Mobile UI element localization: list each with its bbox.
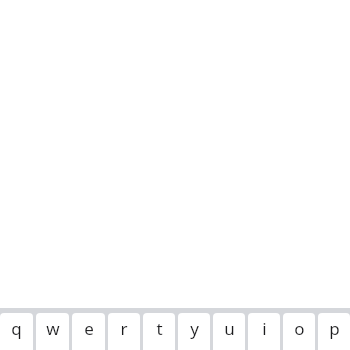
button[interactable]: Key u [213, 313, 245, 350]
staticText: u [224, 317, 235, 340]
button[interactable]: Key t [143, 313, 175, 350]
staticText: q [11, 317, 22, 340]
staticText: r [120, 317, 128, 340]
staticText: o [294, 317, 305, 340]
staticText: i [262, 317, 267, 340]
staticText: t [156, 317, 163, 340]
button[interactable]: Key e [72, 313, 105, 350]
button[interactable]: Key q [0, 313, 33, 350]
button[interactable]: Key o [283, 313, 315, 350]
button[interactable]: Key w [36, 313, 69, 350]
button[interactable]: Key y [178, 313, 210, 350]
button[interactable]: Key r [108, 313, 140, 350]
button[interactable]: Key i [248, 313, 280, 350]
staticText: y [190, 317, 199, 340]
staticText: w [46, 317, 60, 340]
staticText: p [329, 317, 340, 340]
staticText: e [84, 317, 94, 340]
button[interactable]: Key p [318, 313, 350, 350]
